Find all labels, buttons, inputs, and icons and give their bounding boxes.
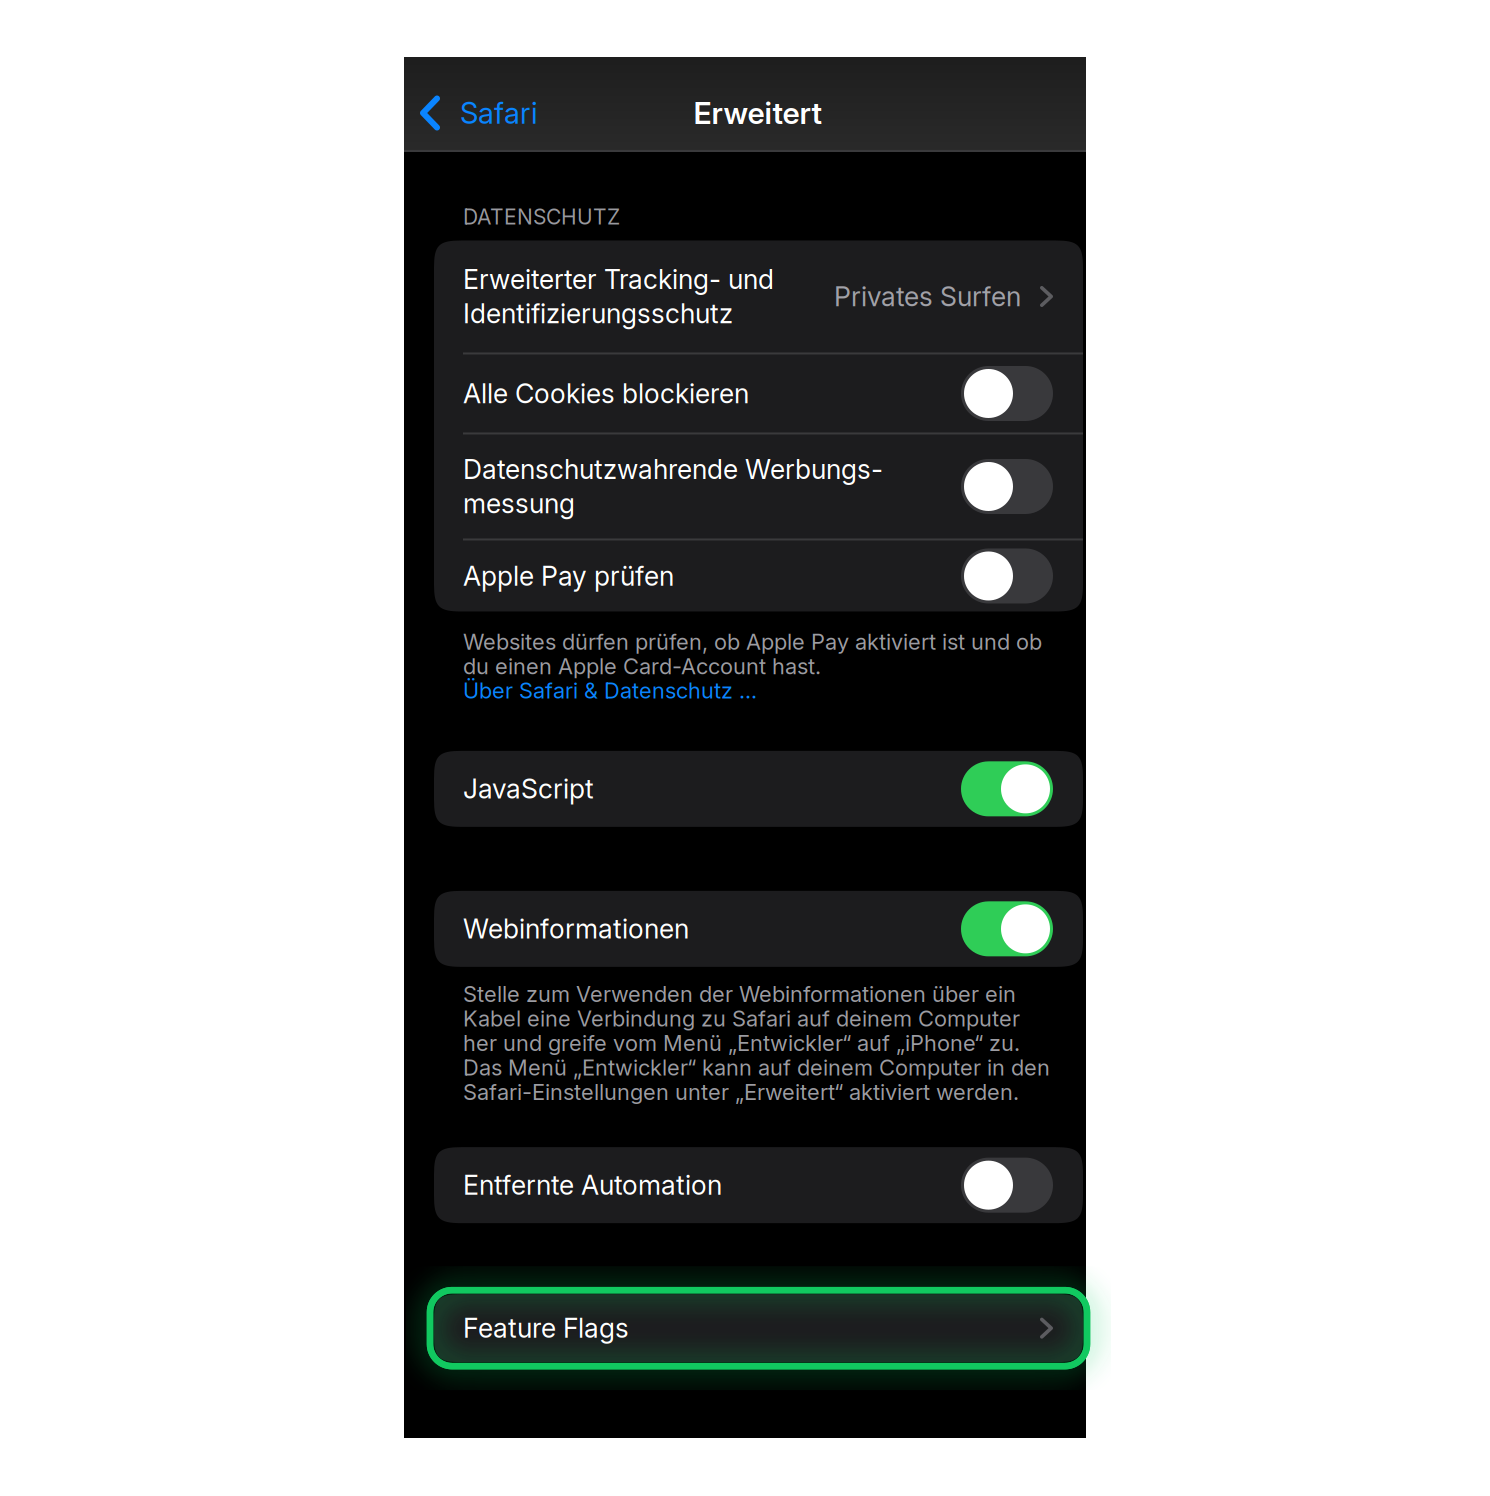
staticText: her und greife vom Menü „Entwickler“ auf… — [463, 1030, 1020, 1056]
button[interactable]: JavaScript — [434, 751, 1083, 827]
button[interactable]: Entfernte Automation — [434, 1147, 1083, 1223]
button[interactable]: Alle Cookies blockieren — [434, 354, 1083, 432]
staticText: Apple Pay prüfen — [463, 560, 674, 592]
staticText: JavaScript — [463, 773, 594, 805]
staticText: Feature Flags — [463, 1312, 629, 1344]
staticText: Datenschutzwahrende Werbungs- — [463, 453, 883, 485]
staticText: Privates Surfen — [834, 280, 1021, 313]
button[interactable]: Über Safari & Datenschutz ... — [463, 677, 757, 704]
button[interactable]: Feature Flags — [434, 1294, 1083, 1362]
staticText: du einen Apple Card-Account hast. — [463, 653, 821, 679]
staticText: Safari — [460, 95, 538, 131]
button[interactable]: Webinformationen — [434, 891, 1083, 967]
staticText: Kabel eine Verbindung zu Safari auf dein… — [463, 1005, 1020, 1032]
staticText: Alle Cookies blockieren — [463, 377, 749, 410]
staticText: Erweiterter Tracking- und — [463, 263, 774, 295]
button[interactable]: Datenschutzwahrende Werbungs- — [434, 434, 1083, 538]
staticText: DATENSCHUTZ — [463, 204, 620, 229]
staticText: Erweitert — [693, 95, 822, 131]
staticText: Das Menü „Entwickler“ kann auf deinem Co… — [463, 1054, 1050, 1081]
button[interactable]: Safari — [404, 76, 550, 150]
staticText: Entfernte Automation — [463, 1169, 722, 1201]
staticText: Webinformationen — [463, 913, 689, 945]
button[interactable]: Apple Pay prüfen — [434, 540, 1083, 611]
staticText: Identifizierungsschutz — [463, 297, 733, 330]
staticText: Über Safari & Datenschutz ... — [463, 677, 757, 704]
staticText: Safari-Einstellungen unter „Erweitert“ a… — [463, 1079, 1019, 1105]
staticText: Websites dürfen prüfen, ob Apple Pay akt… — [463, 628, 1042, 655]
staticText: messung — [463, 487, 575, 520]
button[interactable]: Erweiterter Tracking- und — [434, 240, 1083, 352]
staticText: Stelle zum Verwenden der Webinformatione… — [463, 981, 1016, 1007]
